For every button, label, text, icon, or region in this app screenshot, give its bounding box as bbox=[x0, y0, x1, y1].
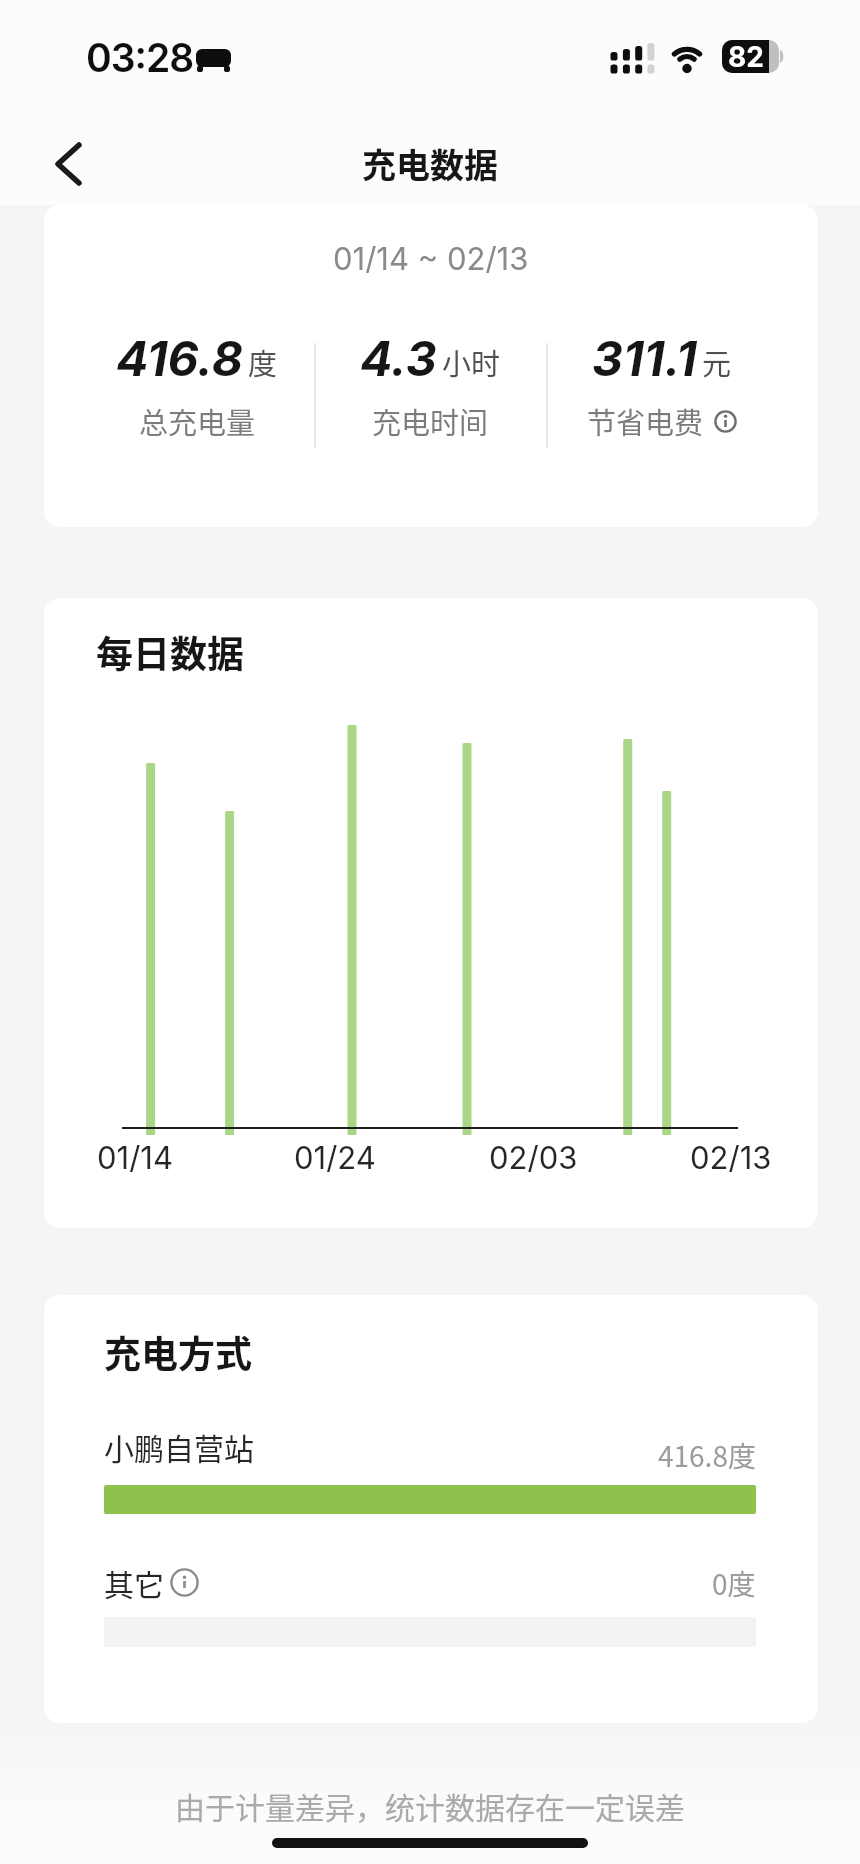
button[interactable] bbox=[170, 1568, 199, 1597]
staticText: 416.8 bbox=[116, 329, 243, 387]
button[interactable] bbox=[36, 132, 100, 196]
staticText: 02/03 bbox=[489, 1139, 578, 1177]
button[interactable] bbox=[714, 410, 737, 433]
staticText: 0度 bbox=[712, 1563, 756, 1604]
staticText: 由于计量差异，统计数据存在一定误差 bbox=[175, 1784, 685, 1827]
staticText: 311.1 bbox=[592, 329, 697, 387]
staticText: 小鹏自营站 bbox=[104, 1425, 254, 1468]
staticText: 每日数据 bbox=[96, 625, 244, 679]
staticText: 03:28 bbox=[86, 34, 194, 81]
staticText: 82 bbox=[728, 40, 764, 73]
staticText: 01/14 ~ 02/13 bbox=[333, 240, 529, 278]
staticText: 其它 bbox=[104, 1561, 164, 1604]
staticText: 充电时间 bbox=[372, 400, 489, 442]
staticText: 节省电费 bbox=[587, 400, 704, 442]
staticText: 4.3 bbox=[360, 329, 437, 387]
staticText: 416.8度 bbox=[658, 1435, 756, 1476]
staticText: 总充电量 bbox=[139, 400, 256, 442]
staticText: 01/24 bbox=[294, 1139, 376, 1177]
staticText: 元 bbox=[702, 341, 732, 383]
staticText: 02/13 bbox=[690, 1139, 772, 1177]
staticText: 小时 bbox=[442, 341, 501, 383]
staticText: 充电方式 bbox=[104, 1325, 252, 1379]
staticText: 01/14 bbox=[97, 1139, 173, 1177]
staticText: 度 bbox=[248, 341, 278, 383]
staticText: 充电数据 bbox=[362, 139, 498, 188]
